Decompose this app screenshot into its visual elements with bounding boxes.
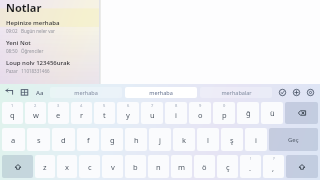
button[interactable]: z [35, 155, 55, 178]
button[interactable]: ! [240, 155, 261, 178]
staticText: v [111, 162, 115, 172]
button[interactable]: Geç [269, 128, 318, 151]
staticText: 6 [127, 103, 130, 108]
staticText: , [272, 163, 275, 173]
staticText: 1 [11, 103, 14, 108]
button[interactable]: x [57, 155, 77, 178]
staticText: 0 [223, 103, 226, 108]
staticText: . [249, 163, 252, 173]
button[interactable]: 3 [48, 102, 69, 124]
button[interactable]: Voice [277, 87, 288, 98]
staticText: 08:50 Öğrenciler [6, 48, 44, 54]
staticText: c [88, 162, 92, 172]
button[interactable]: 0 [213, 102, 235, 124]
button[interactable]: Clipboard [4, 87, 15, 98]
button[interactable]: 5 [94, 102, 115, 124]
button[interactable]: i [245, 128, 267, 151]
staticText: merhaba [74, 89, 98, 96]
button[interactable]: Shift [286, 155, 318, 178]
staticText: g [110, 135, 115, 145]
staticText: ! [250, 156, 252, 161]
staticText: r [80, 110, 84, 120]
button[interactable]: ğ [237, 102, 259, 124]
staticText: i [175, 110, 177, 120]
staticText: q [10, 110, 15, 120]
button[interactable]: Aa [34, 87, 45, 98]
staticText: 5 [103, 103, 106, 108]
button[interactable]: merhaba [50, 87, 122, 98]
button[interactable]: h [125, 128, 147, 151]
button[interactable]: k [173, 128, 195, 151]
staticText: z [43, 162, 47, 172]
button[interactable]: ş [221, 128, 243, 151]
staticText: u [150, 110, 155, 120]
button[interactable]: m [171, 155, 192, 178]
staticText: Aa [36, 89, 44, 97]
button[interactable]: ç [217, 155, 238, 178]
button[interactable]: Backspace [285, 102, 318, 124]
button[interactable]: ? [263, 155, 284, 178]
button[interactable]: ö [194, 155, 215, 178]
button[interactable]: Settings [305, 87, 316, 98]
button[interactable]: Loup nolv 123456urak [6, 59, 99, 74]
staticText: merhaba [149, 89, 173, 96]
button[interactable]: 9 [189, 102, 211, 124]
button[interactable]: 4 [71, 102, 92, 124]
staticText: a [11, 135, 16, 145]
staticText: f [87, 135, 90, 145]
staticText: b [133, 162, 138, 172]
button[interactable]: 2 [25, 102, 46, 124]
button[interactable]: j [149, 128, 171, 151]
staticText: h [134, 135, 139, 145]
staticText: t [103, 110, 106, 120]
button[interactable]: Yeni Not [6, 39, 99, 54]
staticText: p [222, 110, 227, 120]
staticText: 8 [175, 103, 178, 108]
staticText: Loup nolv 123456urak [6, 59, 71, 67]
staticText: 7 [151, 103, 154, 108]
staticText: o [198, 110, 203, 120]
staticText: ? [273, 156, 275, 161]
button[interactable]: merhaba [125, 87, 197, 98]
staticText: Geç [288, 136, 299, 144]
staticText: Hepinize merhaba [6, 19, 60, 27]
staticText: w [33, 110, 39, 120]
staticText: d [61, 135, 66, 145]
button[interactable]: Keyboard layout [19, 87, 30, 98]
button[interactable]: merhabalar [200, 87, 272, 98]
button[interactable]: d [52, 128, 75, 151]
staticText: ş [230, 135, 234, 145]
button[interactable]: Shift [2, 155, 33, 178]
button[interactable]: a [2, 128, 25, 151]
staticText: Pazar 11018331466 [6, 68, 50, 74]
staticText: m [178, 162, 186, 172]
staticText: x [65, 162, 69, 172]
button[interactable]: ü [261, 102, 283, 124]
staticText: 3 [57, 103, 60, 108]
button[interactable]: Hepinize merhaba [6, 19, 99, 34]
button[interactable]: 8 [165, 102, 187, 124]
button[interactable]: 7 [141, 102, 163, 124]
button[interactable]: v [102, 155, 123, 178]
staticText: 9 [199, 103, 202, 108]
button[interactable]: f [77, 128, 99, 151]
staticText: e [56, 110, 61, 120]
staticText: 09:02 Bugün neler var [6, 28, 55, 34]
staticText: s [37, 135, 41, 145]
button[interactable]: Emoji [291, 87, 302, 98]
staticText: ü [270, 108, 275, 118]
button[interactable]: s [27, 128, 50, 151]
staticText: ğ [246, 108, 251, 118]
staticText: i [255, 135, 257, 145]
button[interactable]: 1 [2, 102, 23, 124]
staticText: 2 [34, 103, 37, 108]
button[interactable]: b [125, 155, 146, 178]
button[interactable]: n [148, 155, 169, 178]
button[interactable]: c [79, 155, 100, 178]
staticText: k [182, 135, 187, 145]
staticText: n [156, 162, 161, 172]
button[interactable]: 6 [117, 102, 139, 124]
button[interactable]: l [197, 128, 219, 151]
button[interactable]: g [101, 128, 123, 151]
staticText: 4 [80, 103, 83, 108]
